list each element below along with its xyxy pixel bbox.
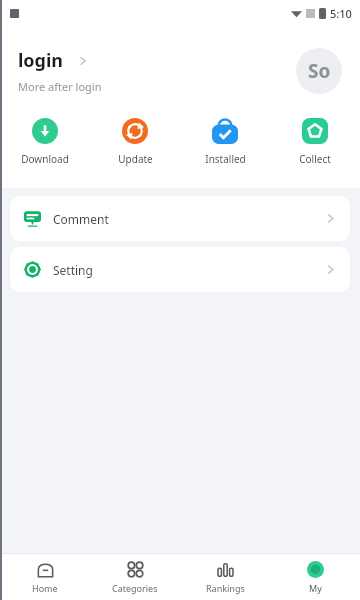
staticText: Download xyxy=(21,152,69,166)
staticText: login xyxy=(18,48,64,73)
button[interactable]: Collect xyxy=(270,116,360,168)
staticText: Categories xyxy=(112,582,158,594)
button[interactable]: Home xyxy=(0,554,90,600)
button[interactable]: login xyxy=(0,48,360,94)
staticText: So xyxy=(308,58,331,84)
staticText: Collect xyxy=(299,152,331,166)
staticText: Rankings xyxy=(206,582,245,594)
staticText: More after login xyxy=(18,79,102,94)
staticText: 5:10 xyxy=(330,6,352,21)
staticText: Setting xyxy=(53,262,93,278)
staticText: Update xyxy=(118,152,153,166)
staticText: My xyxy=(309,582,322,594)
button[interactable]: Comment xyxy=(10,196,350,241)
button[interactable]: Rankings xyxy=(180,554,270,600)
button[interactable]: Categories xyxy=(90,554,180,600)
staticText: Home xyxy=(32,582,58,594)
staticText: Comment xyxy=(53,211,109,227)
button[interactable]: Avatar xyxy=(296,48,342,94)
button[interactable]: Setting xyxy=(10,247,350,292)
button[interactable]: Download xyxy=(0,116,90,168)
button[interactable]: My xyxy=(270,554,360,600)
button[interactable]: Update xyxy=(90,116,180,168)
staticText: Installed xyxy=(205,152,246,166)
button[interactable]: Installed xyxy=(180,116,270,168)
